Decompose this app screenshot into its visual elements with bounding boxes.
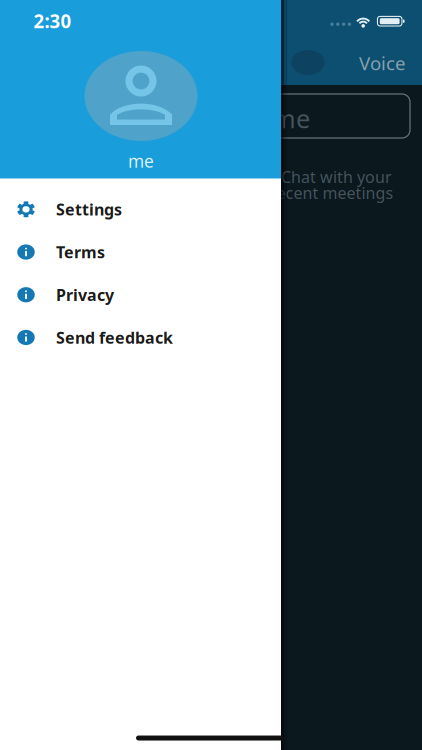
staticText: Search by contact name [26,102,310,135]
button[interactable]: Profile [291,49,325,75]
staticText: Privacy [56,284,114,305]
staticText: Terms [56,241,105,263]
button[interactable]: Send feedback [0,316,281,359]
staticText: Settings [56,199,122,220]
staticText: 2:30 [34,9,72,33]
staticText: Voice [359,51,406,75]
button[interactable]: Terms [0,231,281,273]
staticText: me [128,149,154,172]
staticText: Tap the + button above to start a Chat w… [30,166,392,187]
button[interactable]: Settings [0,188,281,231]
staticText: contacts, or chat with people in recent … [28,182,393,203]
button[interactable]: Privacy [0,273,281,316]
staticText: Send feedback [56,327,173,348]
